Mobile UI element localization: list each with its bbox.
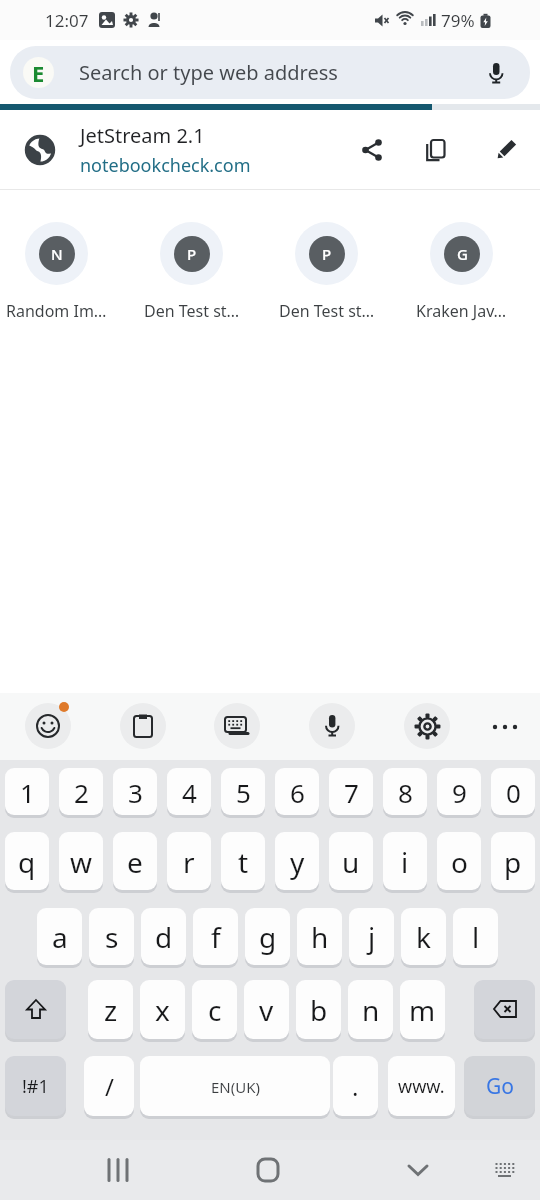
button[interactable]	[25, 703, 71, 749]
staticText: g	[259, 918, 277, 956]
button[interactable]: 8	[383, 768, 427, 816]
button[interactable]: 6	[275, 768, 319, 816]
button[interactable]: c	[192, 980, 237, 1040]
button[interactable]: e	[113, 832, 157, 891]
staticText: EN(UK)	[211, 1077, 260, 1097]
button[interactable]: z	[88, 980, 133, 1040]
staticText: s	[105, 918, 119, 956]
staticText: !#1	[22, 1074, 49, 1099]
button[interactable]: !#1	[5, 1056, 66, 1117]
button[interactable]	[474, 980, 535, 1040]
staticText: w	[70, 843, 93, 881]
staticText: j	[368, 918, 376, 956]
button[interactable]: j	[349, 908, 394, 966]
button[interactable]: 7	[329, 768, 373, 816]
staticText: k	[416, 918, 431, 956]
button[interactable]	[106, 1158, 130, 1182]
staticText: 8	[398, 775, 413, 810]
button[interactable]: EN(UK)	[140, 1056, 330, 1117]
staticText: Kraken Jav…	[416, 300, 507, 322]
button[interactable]	[256, 1158, 280, 1182]
button[interactable]	[5, 980, 66, 1040]
button[interactable]: P	[124, 222, 259, 322]
staticText: b	[310, 991, 328, 1029]
button[interactable]: b	[296, 980, 341, 1040]
button[interactable]: P	[259, 222, 394, 322]
staticText: 1	[20, 775, 35, 810]
button[interactable]: x	[140, 980, 185, 1040]
staticText: e	[127, 843, 143, 881]
button[interactable]: www.	[388, 1056, 455, 1117]
button[interactable]	[494, 1159, 516, 1181]
button[interactable]: 3	[113, 768, 157, 816]
button[interactable]: q	[5, 832, 49, 891]
staticText: o	[451, 843, 468, 881]
staticText: c	[208, 991, 222, 1029]
button[interactable]: 0	[491, 768, 535, 816]
button[interactable]	[492, 714, 518, 740]
button[interactable]: s	[89, 908, 134, 966]
staticText: 6	[290, 775, 305, 810]
button[interactable]	[120, 703, 166, 749]
button[interactable]	[309, 703, 355, 749]
button[interactable]	[360, 138, 384, 162]
button[interactable]: o	[437, 832, 481, 891]
button[interactable]: /	[84, 1056, 134, 1117]
staticText: h	[311, 918, 329, 956]
button[interactable]: .	[333, 1056, 378, 1117]
button[interactable]: i	[383, 832, 427, 891]
button[interactable]: l	[453, 908, 498, 966]
staticText: .	[352, 1070, 359, 1103]
button[interactable]	[406, 1158, 430, 1182]
staticText: P	[322, 244, 332, 264]
button[interactable]: p	[491, 832, 535, 891]
button[interactable]	[484, 61, 508, 85]
button[interactable]: g	[245, 908, 290, 966]
button[interactable]: t	[221, 832, 265, 891]
staticText: 2	[74, 775, 89, 810]
button[interactable]: N	[0, 222, 124, 322]
button[interactable]: a	[37, 908, 82, 966]
staticText: i	[401, 843, 409, 881]
button[interactable]: h	[297, 908, 342, 966]
staticText: G	[457, 244, 468, 264]
staticText: l	[472, 918, 480, 956]
staticText: x	[155, 991, 170, 1029]
button[interactable]: w	[59, 832, 103, 891]
button[interactable]: JetStream 2.1	[0, 110, 540, 189]
button[interactable]: y	[275, 832, 319, 891]
button[interactable]: Go	[464, 1056, 535, 1117]
staticText: z	[104, 991, 118, 1029]
button[interactable]: u	[329, 832, 373, 891]
button[interactable]: n	[348, 980, 393, 1040]
staticText: Den Test st…	[279, 300, 375, 322]
staticText: u	[342, 843, 360, 881]
button[interactable]: 2	[59, 768, 103, 816]
button[interactable]: d	[141, 908, 186, 966]
staticText: /	[105, 1070, 114, 1103]
staticText: notebookcheck.com	[80, 153, 251, 178]
button[interactable]: 4	[167, 768, 211, 816]
button[interactable]: G	[394, 222, 529, 322]
staticText: m	[409, 991, 436, 1029]
staticText: f	[211, 918, 221, 956]
button[interactable]: k	[401, 908, 446, 966]
button[interactable]: 5	[221, 768, 265, 816]
staticText: v	[259, 991, 274, 1029]
button[interactable]	[494, 138, 518, 162]
button[interactable]	[423, 138, 447, 162]
staticText: www.	[398, 1074, 445, 1099]
button[interactable]: 9	[437, 768, 481, 816]
button[interactable]: v	[244, 980, 289, 1040]
button[interactable]: m	[400, 980, 445, 1040]
staticText: n	[362, 991, 380, 1029]
button[interactable]: r	[167, 832, 211, 891]
button[interactable]: 1	[5, 768, 49, 816]
staticText: 3	[128, 775, 143, 810]
staticText: Search or type web address	[79, 59, 338, 86]
button[interactable]	[404, 703, 450, 749]
button[interactable]: E	[10, 46, 530, 99]
staticText: r	[183, 843, 195, 881]
button[interactable]: f	[193, 908, 238, 966]
button[interactable]	[214, 703, 260, 749]
